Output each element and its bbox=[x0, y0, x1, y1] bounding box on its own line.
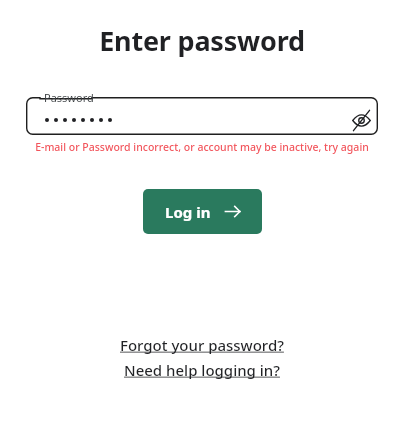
button[interactable]: Log in bbox=[143, 189, 262, 234]
staticText: Forgot your password? bbox=[120, 335, 284, 355]
button[interactable]: Forgot your password? bbox=[120, 335, 284, 355]
staticText: Log in bbox=[165, 202, 211, 222]
button[interactable]: Show password bbox=[344, 103, 378, 137]
staticText: Password bbox=[44, 90, 94, 105]
staticText: Need help logging in? bbox=[124, 360, 280, 380]
staticText: Enter password bbox=[0, 22, 404, 59]
button[interactable]: Need help logging in? bbox=[124, 360, 280, 380]
staticText: E-mail or Password incorrect, or account… bbox=[14, 140, 390, 154]
